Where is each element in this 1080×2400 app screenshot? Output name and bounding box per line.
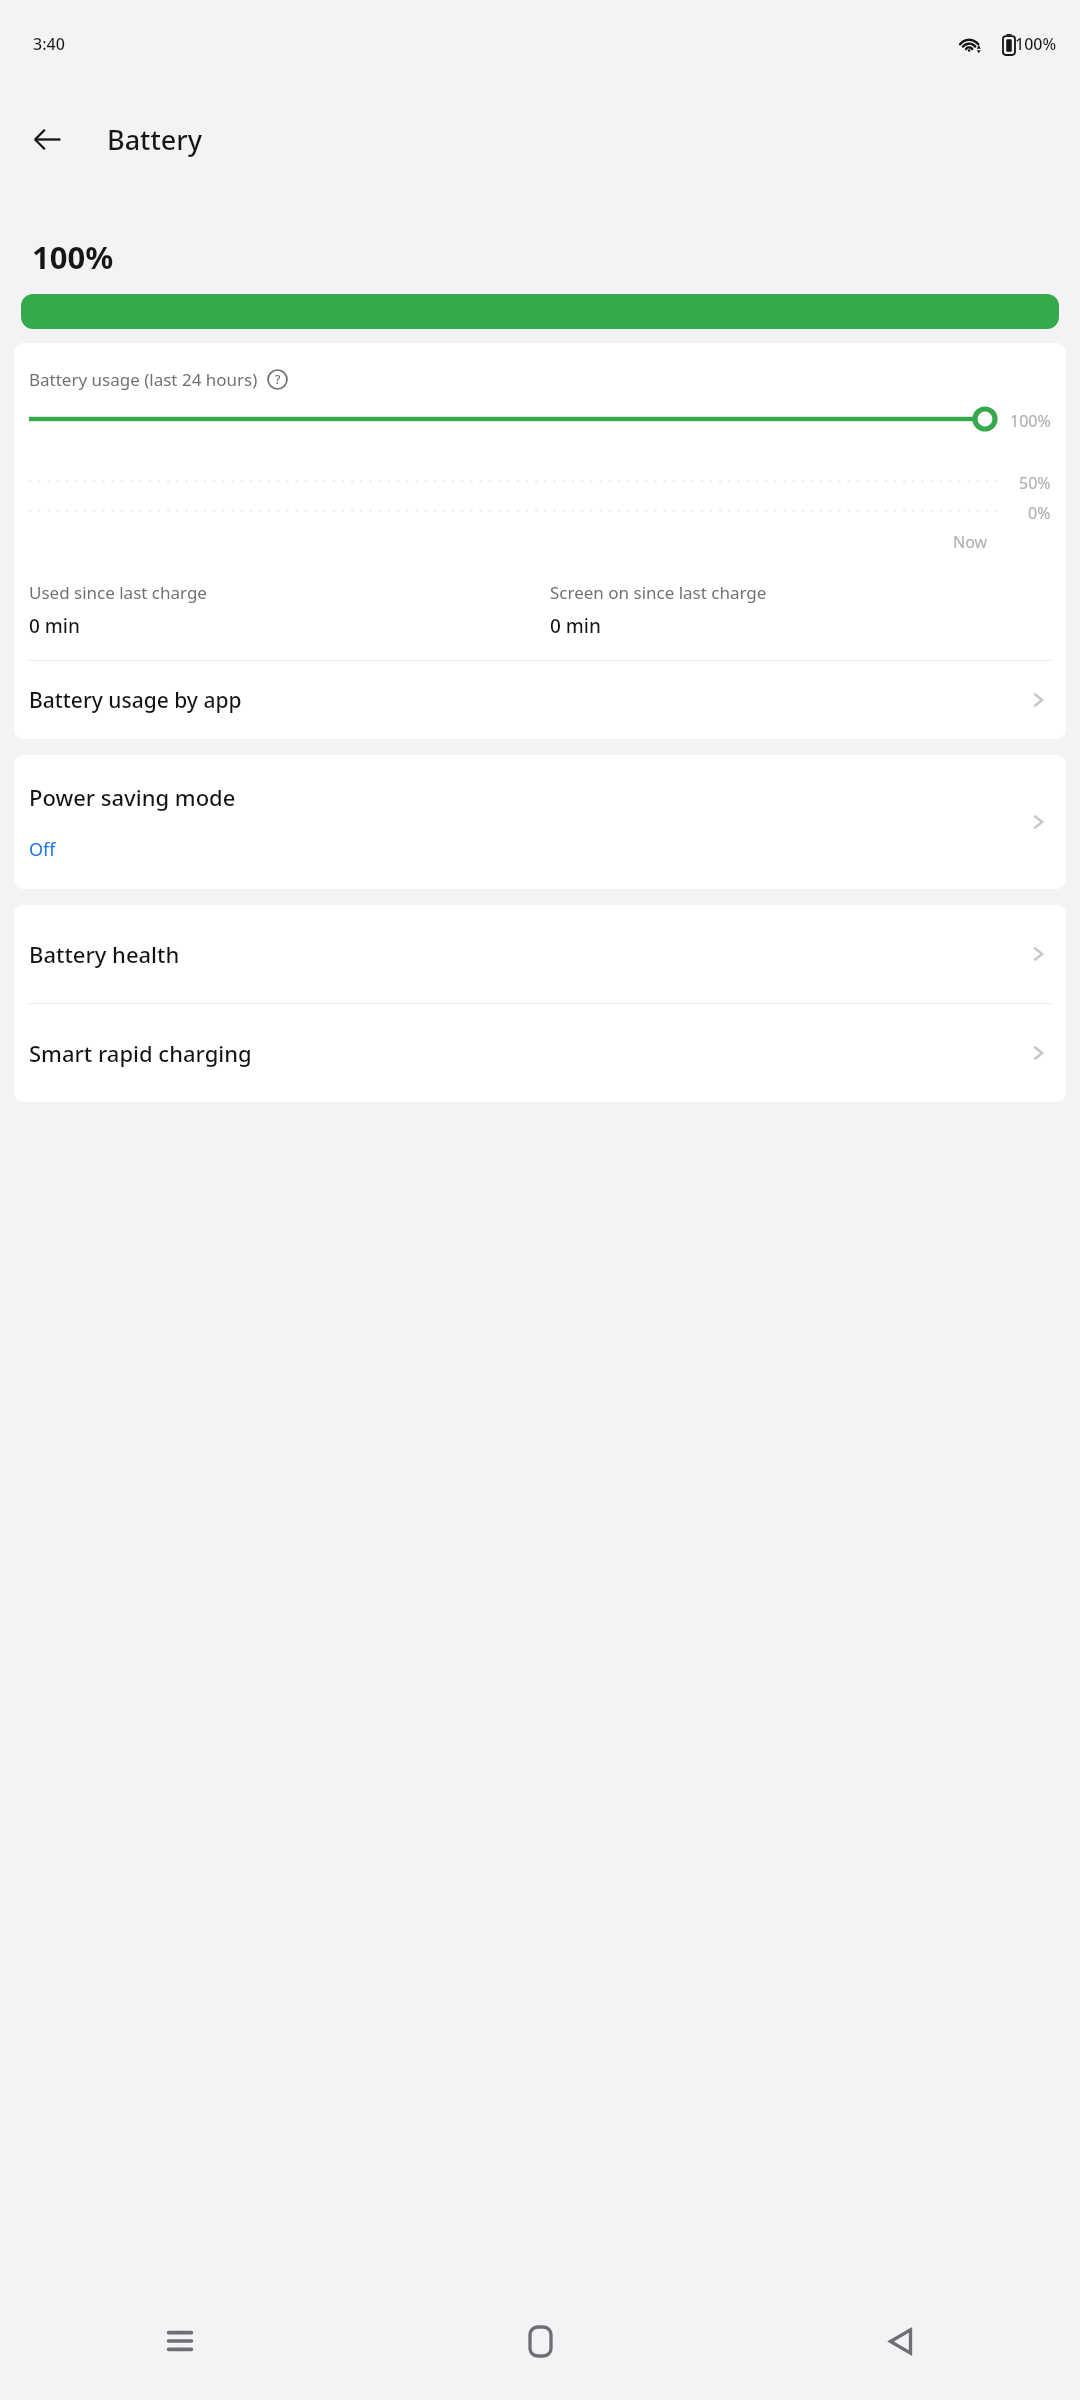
staticText: 0 min — [29, 613, 80, 639]
staticText: 0 min — [550, 613, 601, 639]
staticText: Battery health — [29, 939, 1025, 969]
staticText: Off — [29, 837, 56, 862]
staticText: Screen on since last charge — [550, 581, 767, 604]
staticText: 100% — [1010, 410, 1051, 432]
staticText: Battery — [107, 121, 202, 158]
button[interactable]: Smart rapid charging — [14, 1004, 1066, 1102]
button[interactable]: Battery usage by app — [14, 661, 1066, 739]
staticText: Used since last charge — [29, 581, 207, 604]
staticText: 0% — [1028, 502, 1051, 524]
staticText: Now — [953, 531, 988, 553]
staticText: Battery usage by app — [29, 686, 1025, 715]
button[interactable]: Home — [360, 2282, 720, 2400]
button[interactable]: Power saving mode — [14, 755, 1066, 889]
staticText: ? — [275, 371, 281, 387]
staticText: Power saving mode — [29, 782, 236, 812]
staticText: 100% — [32, 236, 114, 278]
staticText: 100% — [1015, 33, 1057, 55]
staticText: Battery usage (last 24 hours) — [29, 368, 258, 391]
button[interactable]: Recents — [0, 2282, 360, 2400]
button[interactable]: Help — [267, 369, 288, 390]
staticText: 50% — [1019, 472, 1051, 494]
button[interactable]: Back — [18, 110, 76, 168]
button[interactable]: Back — [720, 2282, 1080, 2400]
staticText: Smart rapid charging — [29, 1038, 1025, 1068]
staticText: 3:40 — [33, 33, 65, 55]
button[interactable]: Battery health — [14, 905, 1066, 1003]
